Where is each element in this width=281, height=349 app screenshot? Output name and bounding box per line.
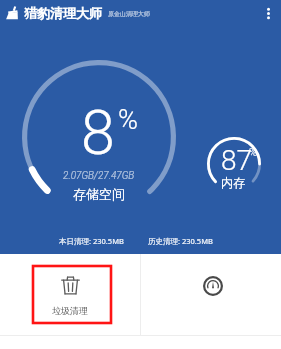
staticText: 猎豹清理大师 [24, 5, 102, 21]
staticText: 存储空间 [73, 186, 125, 202]
staticText: % [118, 104, 138, 136]
staticText: % [249, 146, 258, 159]
button[interactable]: 垃圾清理 [0, 254, 140, 335]
button[interactable]: Speed boost [141, 254, 281, 335]
staticText: 87 [221, 144, 253, 177]
staticText: 垃圾清理 [52, 305, 88, 316]
staticText: 原金山清理大师 [108, 10, 150, 18]
staticText: 本日清理: 230.5MB [59, 236, 124, 246]
staticText: 内存 [221, 175, 245, 190]
staticText: 历史清理: 230.5MB [148, 236, 213, 246]
staticText: 2.07GB/27.47GB [63, 170, 135, 182]
button[interactable]: More options [257, 2, 279, 24]
staticText: 8 [81, 97, 115, 168]
